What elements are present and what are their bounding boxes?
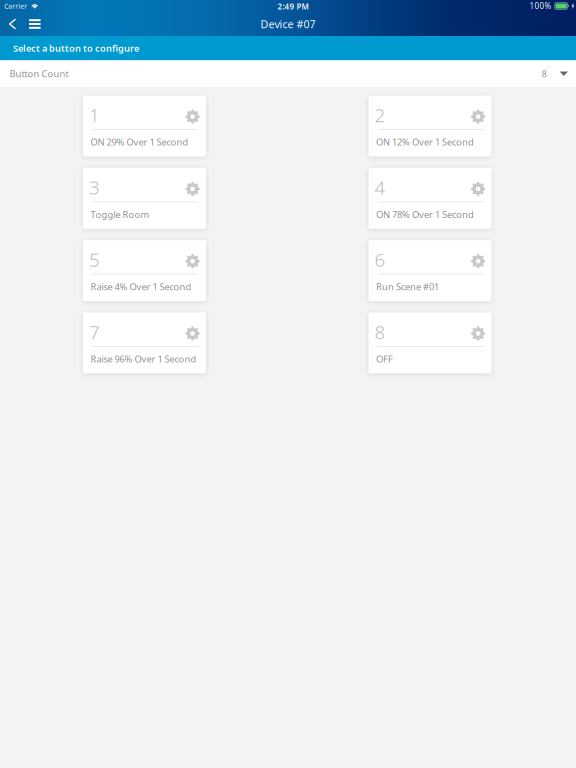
- staticText: ON 12% Over 1 Second: [376, 136, 474, 148]
- button[interactable]: 5: [83, 240, 206, 301]
- button[interactable]: 7: [83, 312, 206, 373]
- staticText: OFF: [376, 353, 393, 365]
- staticText: ON 29% Over 1 Second: [91, 136, 189, 148]
- button[interactable]: Button Count: [0, 60, 576, 87]
- staticText: 1: [89, 103, 100, 127]
- staticText: Raise 96% Over 1 Second: [91, 353, 197, 365]
- staticText: Run Scene #01: [376, 280, 439, 293]
- button[interactable]: 2: [368, 95, 491, 156]
- staticText: Raise 4% Over 1 Second: [91, 280, 192, 293]
- staticText: 100%: [530, 1, 552, 11]
- staticText: 5: [89, 247, 100, 272]
- staticText: ON 78% Over 1 Second: [376, 208, 474, 220]
- staticText: Carrier: [4, 2, 27, 11]
- staticText: Device #07: [260, 17, 315, 31]
- staticText: 2: [374, 103, 385, 127]
- button[interactable]: 6: [368, 240, 491, 301]
- staticText: Button Count: [9, 67, 68, 80]
- staticText: Toggle Room: [91, 208, 150, 220]
- staticText: 3: [89, 175, 100, 200]
- button[interactable]: 8: [368, 312, 491, 373]
- staticText: 2:49 PM: [277, 1, 308, 12]
- staticText: Select a button to configure: [13, 42, 139, 54]
- staticText: 7: [89, 319, 100, 344]
- button[interactable]: 3: [83, 168, 206, 229]
- staticText: 8: [542, 67, 547, 80]
- button[interactable]: 1: [83, 95, 206, 156]
- staticText: 8: [374, 319, 385, 344]
- staticText: 6: [374, 247, 385, 272]
- staticText: 4: [374, 175, 385, 200]
- button[interactable]: 4: [368, 168, 491, 229]
- button[interactable]: Back: [3, 12, 23, 36]
- button[interactable]: Menu: [24, 12, 45, 36]
